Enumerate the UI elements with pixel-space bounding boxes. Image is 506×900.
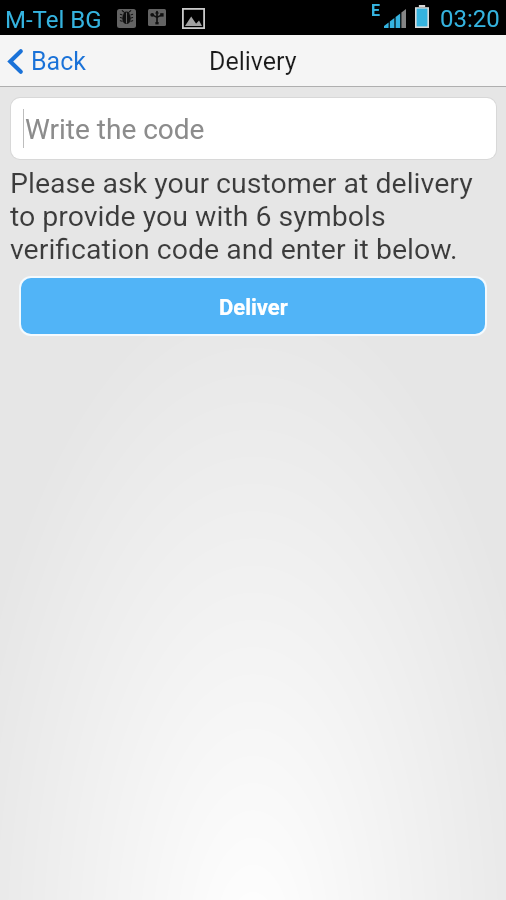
button[interactable]: Back <box>0 41 100 82</box>
staticText: Back <box>31 47 86 76</box>
staticText: verification code and enter it below. <box>10 233 458 266</box>
staticText: Write the code <box>25 113 205 146</box>
button[interactable]: Deliver <box>21 278 485 334</box>
staticText: Deliver <box>219 295 288 321</box>
staticText: M-Tel BG <box>5 6 102 34</box>
staticText: Delivery <box>209 47 297 76</box>
staticText: Please ask your customer at delivery <box>10 167 473 200</box>
other: Back <box>7 49 23 74</box>
staticText: to provide you with 6 symbols <box>10 200 386 233</box>
staticText: 03:20 <box>440 5 500 33</box>
button[interactable]: Write the code <box>11 98 496 159</box>
staticText: E <box>371 1 380 20</box>
